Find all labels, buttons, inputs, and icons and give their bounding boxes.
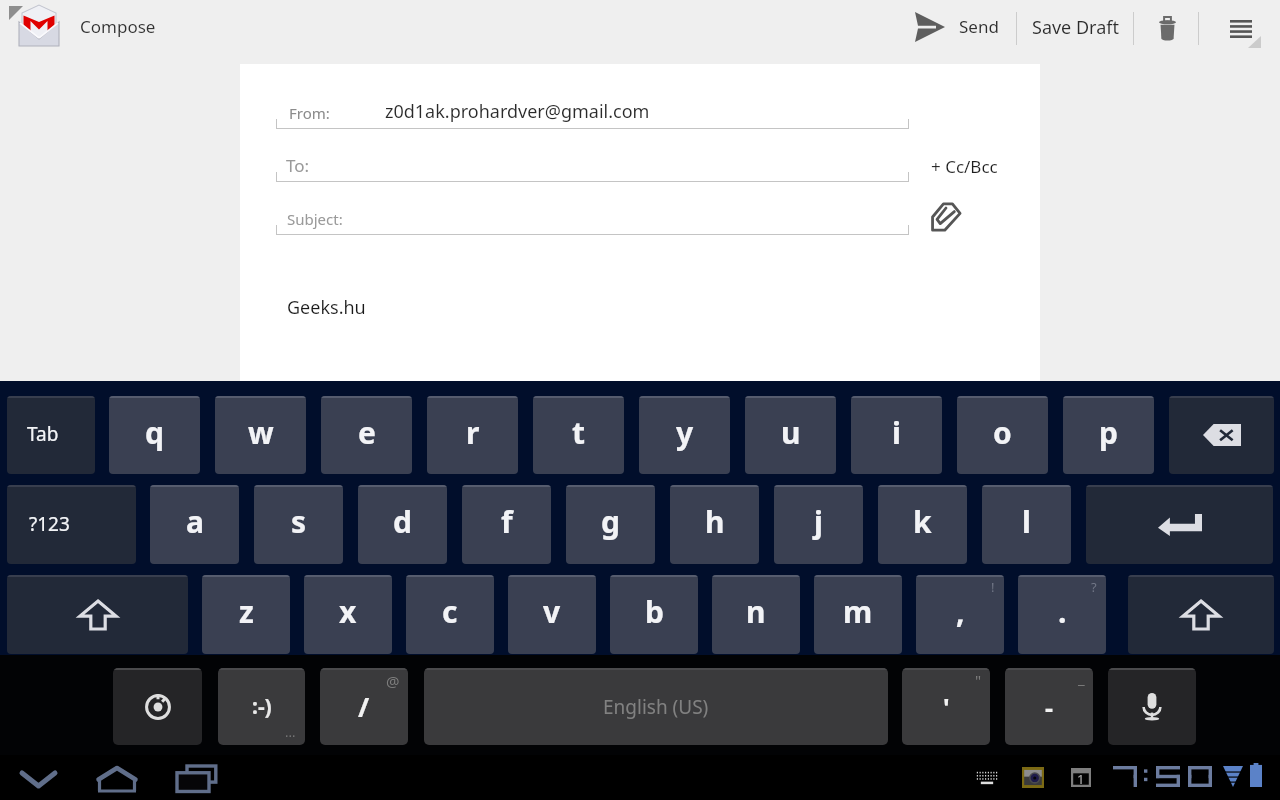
staticText: u — [781, 412, 801, 453]
button[interactable]: b — [610, 575, 698, 654]
staticText: Tab — [27, 421, 59, 447]
staticText: b — [645, 591, 664, 632]
staticText: m — [843, 591, 873, 632]
button[interactable]: t — [533, 396, 624, 474]
button[interactable]: i — [851, 396, 942, 474]
button[interactable]: Keyboard settings — [113, 668, 202, 745]
staticText: n — [746, 591, 766, 632]
button[interactable]: Send — [900, 0, 1006, 57]
button[interactable]: g — [566, 485, 655, 564]
staticText: ... — [285, 723, 296, 741]
staticText: - — [1045, 690, 1054, 724]
button[interactable]: n — [712, 575, 800, 654]
staticText: ' — [943, 690, 950, 724]
staticText: w — [248, 412, 274, 453]
staticText: k — [913, 501, 932, 542]
button[interactable]: Voice input — [1108, 668, 1196, 745]
staticText: Subject: — [287, 209, 343, 229]
button[interactable]: j — [774, 485, 863, 564]
button[interactable]: o — [957, 396, 1048, 474]
button[interactable]: More options — [1215, 1, 1267, 57]
button[interactable]: h — [670, 485, 759, 564]
staticText: z0d1ak.prohardver@gmail.com — [385, 99, 650, 124]
staticText: j — [814, 501, 823, 542]
staticText: ? — [1091, 578, 1097, 596]
staticText: @ — [386, 671, 400, 691]
button[interactable]: Shift — [7, 575, 188, 654]
button[interactable]: m — [814, 575, 902, 654]
staticText: _ — [1078, 668, 1085, 688]
staticText: Compose — [80, 15, 156, 38]
button[interactable]: Delete — [1169, 396, 1274, 474]
button[interactable]: y — [639, 396, 730, 474]
button[interactable]: + Cc/Bcc — [931, 149, 1015, 183]
staticText: + Cc/Bcc — [931, 155, 998, 178]
button[interactable]: Discard — [1140, 0, 1194, 57]
staticText: z — [239, 591, 254, 632]
staticText: t — [572, 412, 586, 453]
button[interactable]: Save Draft — [1022, 0, 1128, 57]
button[interactable]: l — [982, 485, 1071, 564]
staticText: q — [145, 412, 164, 453]
staticText: o — [993, 412, 1012, 453]
button[interactable]: u — [745, 396, 836, 474]
staticText: To: — [286, 154, 310, 177]
staticText: v — [543, 591, 561, 632]
button[interactable]: p — [1063, 396, 1154, 474]
staticText: 1 — [1077, 770, 1085, 788]
button[interactable]: Enter — [1086, 485, 1273, 564]
staticText: . — [1058, 591, 1067, 632]
staticText: ?123 — [29, 511, 70, 537]
button[interactable]: Shift — [1128, 575, 1274, 654]
button[interactable]: . — [1018, 575, 1106, 654]
button[interactable]: , — [916, 575, 1004, 654]
staticText: a — [186, 501, 204, 542]
staticText: " — [975, 670, 982, 690]
staticText: s — [291, 501, 307, 542]
staticText: h — [705, 501, 725, 542]
button[interactable]: - — [1005, 668, 1093, 745]
staticText: d — [393, 501, 412, 542]
button[interactable]: r — [427, 396, 518, 474]
staticText: p — [1099, 412, 1118, 453]
button[interactable]: ?123 — [7, 485, 136, 564]
button[interactable]: Recent apps — [168, 757, 226, 799]
staticText: Save Draft — [1032, 15, 1119, 40]
staticText: e — [358, 412, 376, 453]
button[interactable]: w — [215, 396, 306, 474]
button[interactable]: d — [358, 485, 447, 564]
staticText: l — [1022, 501, 1031, 542]
staticText: Send — [959, 15, 999, 38]
staticText: x — [339, 591, 357, 632]
button[interactable]: a — [150, 485, 239, 564]
staticText: , — [956, 591, 965, 632]
button[interactable]: s — [254, 485, 343, 564]
button[interactable]: Attach file — [920, 191, 972, 243]
button[interactable]: q — [109, 396, 200, 474]
button[interactable]: z — [202, 575, 290, 654]
button[interactable]: Home — [88, 757, 146, 799]
staticText: From: — [289, 103, 330, 123]
staticText: i — [892, 412, 901, 453]
button[interactable]: e — [321, 396, 412, 474]
staticText: English (US) — [603, 694, 709, 720]
staticText: c — [442, 591, 458, 632]
button[interactable]: English (US) — [424, 668, 888, 745]
button[interactable]: c — [406, 575, 494, 654]
staticText: / — [358, 688, 370, 725]
staticText: ! — [991, 578, 995, 596]
button[interactable]: f — [462, 485, 551, 564]
staticText: g — [601, 501, 620, 542]
button[interactable]: :-) — [218, 668, 305, 745]
button[interactable]: Navigate up — [8, 4, 66, 54]
staticText: r — [466, 412, 480, 453]
button[interactable]: Tab — [7, 396, 95, 474]
button[interactable]: v — [508, 575, 596, 654]
staticText: Geeks.hu — [287, 295, 366, 320]
button[interactable]: / — [320, 668, 408, 745]
staticText: :-) — [252, 692, 272, 721]
button[interactable]: k — [878, 485, 967, 564]
button[interactable]: Back — [8, 757, 68, 799]
button[interactable]: ' — [902, 668, 990, 745]
button[interactable]: x — [304, 575, 392, 654]
